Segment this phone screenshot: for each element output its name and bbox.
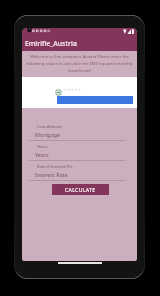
staticText: Welcome to Emi viewpoint Austria Please …: [25, 54, 134, 73]
staticText: Years:: [37, 144, 48, 149]
staticText: Emirifle_Austria: [25, 39, 77, 48]
button[interactable]: Mortgage: [35, 131, 61, 138]
button[interactable]: CALCULATE: [52, 184, 109, 195]
button[interactable]: Install advertisement: [22, 77, 137, 108]
button[interactable]: Years: [35, 151, 49, 158]
button[interactable]: Emirifle_Austria: [22, 35, 137, 51]
button[interactable]: Interest Rate: [35, 171, 68, 178]
staticText: CALCULATE: [65, 186, 96, 193]
staticText: Loan Amount:: [37, 124, 63, 129]
staticText: Rate of Interest (%):: [37, 164, 73, 169]
